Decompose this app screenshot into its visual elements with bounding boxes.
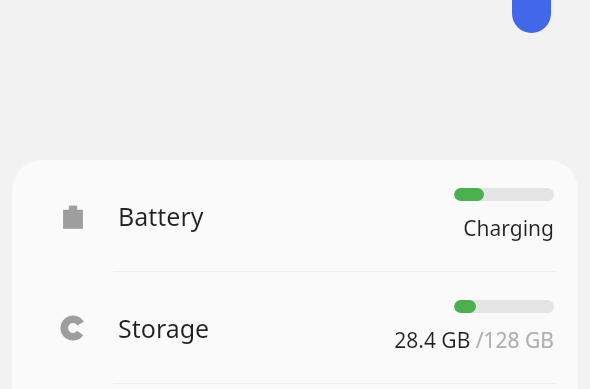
staticText: Charging [463, 214, 554, 243]
button[interactable]: Storage [12, 272, 578, 383]
button[interactable]: Add [512, 0, 551, 33]
staticText: Battery [118, 199, 204, 233]
staticText: Storage [118, 311, 210, 345]
button[interactable]: Battery [12, 160, 578, 271]
staticText: 28.4 GB /128 GB [394, 326, 554, 355]
